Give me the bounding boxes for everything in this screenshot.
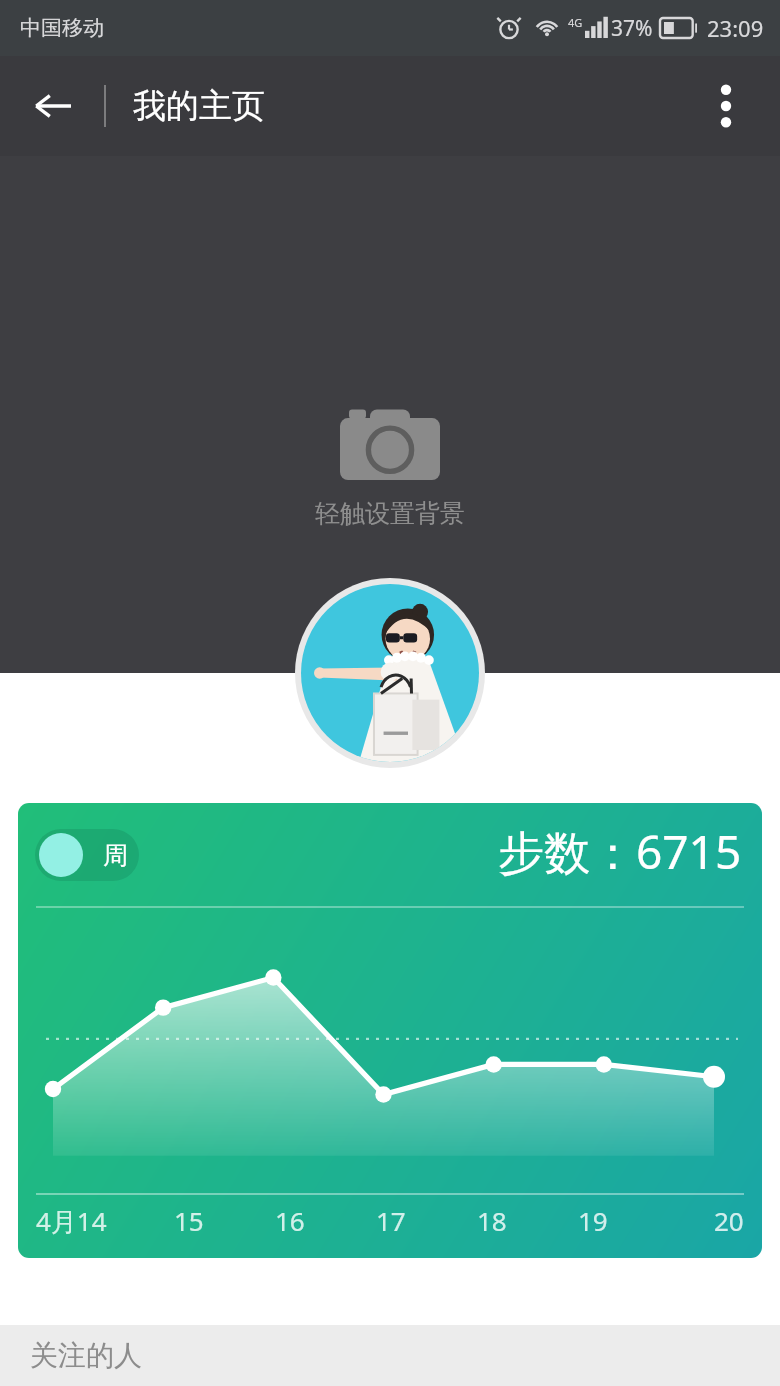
staticText: 步数：6715	[498, 820, 742, 883]
staticText: 轻触设置背景	[315, 498, 465, 529]
staticText: 15	[174, 1203, 204, 1238]
staticText: 17	[376, 1203, 406, 1238]
button[interactable]: 周	[35, 829, 139, 881]
button[interactable]: More options	[684, 64, 768, 148]
button[interactable]: 关注的人	[0, 1325, 780, 1386]
staticText: 4月14	[36, 1203, 107, 1239]
button[interactable]: 周	[18, 803, 762, 1258]
button[interactable]: Profile photo	[295, 578, 485, 768]
staticText: 23:09	[707, 13, 764, 43]
staticText: 周	[103, 840, 128, 871]
staticText: 16	[275, 1203, 305, 1238]
staticText: 19	[578, 1203, 608, 1238]
staticText: 关注的人	[30, 1338, 142, 1373]
staticText: 37%	[611, 14, 653, 43]
button[interactable]: Set background	[0, 156, 780, 673]
staticText: 4G	[568, 15, 583, 30]
staticText: 18	[477, 1203, 507, 1238]
staticText: 20	[714, 1203, 744, 1238]
button[interactable]: Back	[11, 64, 95, 148]
staticText: 我的主页	[133, 85, 265, 127]
staticText: 中国移动	[20, 15, 104, 41]
